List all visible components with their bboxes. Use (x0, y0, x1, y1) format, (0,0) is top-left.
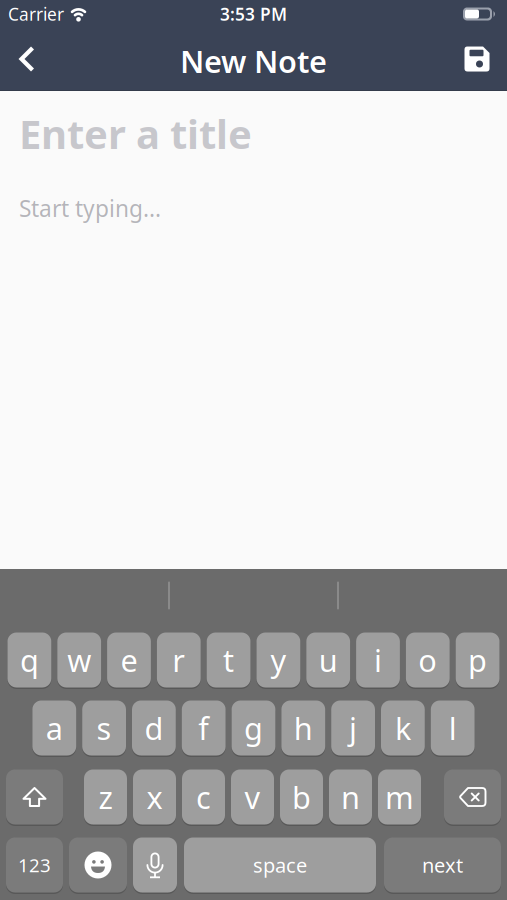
button[interactable]: w (57, 632, 101, 687)
button[interactable]: p (456, 632, 499, 687)
staticText: New Note (180, 41, 327, 81)
staticText: 123 (18, 853, 51, 877)
staticText: g (244, 708, 263, 748)
button[interactable]: 123 (6, 837, 63, 892)
button[interactable]: h (281, 700, 325, 755)
button[interactable]: k (381, 700, 425, 755)
staticText: 3:53 PM (220, 2, 287, 25)
staticText: Carrier (8, 2, 64, 25)
staticText: y (270, 640, 286, 680)
staticText: next (422, 852, 463, 878)
staticText: a (46, 708, 63, 748)
button[interactable]: space (184, 837, 376, 892)
staticText: s (97, 708, 112, 748)
staticText: r (172, 640, 185, 680)
staticText: u (319, 640, 338, 680)
staticText: l (449, 708, 457, 748)
button[interactable]: o (406, 632, 450, 687)
staticText: n (341, 777, 360, 817)
button[interactable]: q (7, 632, 51, 687)
button[interactable]: l (431, 700, 475, 755)
button[interactable]: g (232, 700, 275, 755)
staticText: Enter a title (19, 107, 252, 160)
button[interactable]: t (207, 632, 250, 687)
staticText: f (198, 708, 209, 748)
button[interactable] (455, 37, 499, 81)
button[interactable] (6, 769, 63, 824)
button[interactable]: e (107, 632, 151, 687)
staticText: v (244, 777, 260, 817)
button[interactable]: a (32, 700, 76, 755)
button[interactable]: d (132, 700, 176, 755)
button[interactable]: r (157, 632, 201, 687)
button[interactable]: z (84, 769, 127, 824)
staticText: c (196, 777, 211, 817)
button[interactable]: y (256, 632, 300, 687)
button[interactable]: f (182, 700, 226, 755)
button[interactable]: v (231, 769, 274, 824)
button[interactable]: s (82, 700, 126, 755)
staticText: o (418, 640, 437, 680)
staticText: b (292, 777, 311, 817)
button[interactable] (69, 837, 127, 892)
staticText: x (146, 777, 162, 817)
staticText: q (20, 640, 39, 680)
staticText: Start typing... (19, 193, 161, 223)
button[interactable] (7, 37, 47, 81)
staticText: t (223, 640, 234, 680)
staticText: k (395, 708, 411, 748)
staticText: d (144, 708, 163, 748)
staticText: h (294, 708, 313, 748)
staticText: m (385, 777, 414, 817)
staticText: space (253, 852, 307, 878)
button[interactable]: x (133, 769, 176, 824)
button[interactable] (444, 769, 501, 824)
staticText: i (374, 640, 382, 680)
staticText: w (67, 640, 91, 680)
button[interactable]: j (331, 700, 375, 755)
button[interactable]: n (329, 769, 372, 824)
staticText: p (468, 640, 487, 680)
button[interactable]: c (182, 769, 225, 824)
button[interactable] (133, 837, 177, 892)
staticText: z (98, 777, 112, 817)
staticText: j (349, 708, 357, 748)
button[interactable]: b (280, 769, 323, 824)
staticText: e (120, 640, 137, 680)
button[interactable]: u (306, 632, 350, 687)
button[interactable]: i (356, 632, 400, 687)
button[interactable]: next (384, 837, 501, 892)
button[interactable]: m (378, 769, 421, 824)
